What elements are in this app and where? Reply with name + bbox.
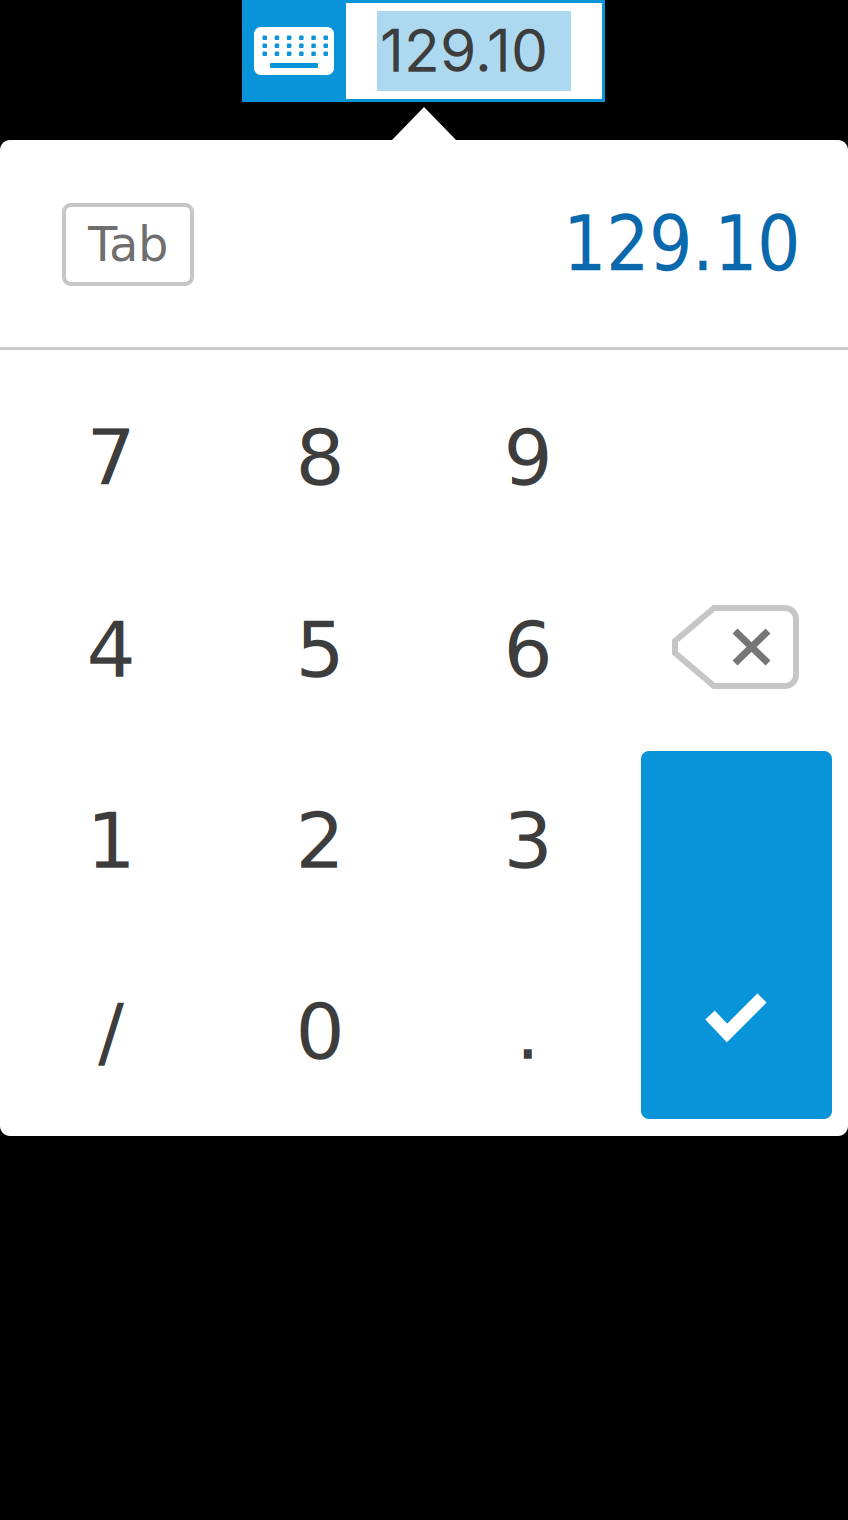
staticText: 8 (295, 413, 344, 503)
staticText: 7 (86, 413, 135, 503)
button[interactable]: Amount field (346, 3, 602, 99)
button[interactable]: 8 (232, 378, 408, 538)
staticText: 0 (295, 987, 344, 1077)
staticText: 9 (503, 413, 552, 503)
staticText: 2 (295, 796, 344, 886)
button[interactable]: 9 (440, 378, 616, 538)
staticText: 6 (503, 605, 552, 695)
button[interactable]: 0 (232, 952, 408, 1112)
button[interactable]: 7 (23, 378, 199, 538)
button[interactable]: 2 (232, 761, 408, 921)
button[interactable]: 6 (440, 570, 616, 730)
staticText: 3 (503, 796, 552, 886)
button[interactable]: Tab (64, 205, 192, 284)
button[interactable]: 1 (23, 761, 199, 921)
staticText: 5 (295, 605, 344, 695)
button[interactable]: 4 (23, 570, 199, 730)
button[interactable]: 5 (232, 570, 408, 730)
staticText: Tab (88, 217, 168, 272)
button[interactable]: Delete (650, 585, 819, 709)
button[interactable]: Show keyboard (242, 0, 346, 102)
staticText: 4 (86, 605, 135, 695)
staticText: 129.10 (380, 15, 548, 86)
button[interactable]: Confirm (641, 751, 832, 1119)
button[interactable]: / (23, 952, 199, 1112)
staticText: / (98, 987, 124, 1077)
staticText: 1 (86, 796, 135, 886)
button[interactable]: . (440, 952, 616, 1112)
staticText: . (515, 987, 540, 1077)
button[interactable]: 3 (440, 761, 616, 921)
staticText: 129.10 (563, 200, 800, 288)
